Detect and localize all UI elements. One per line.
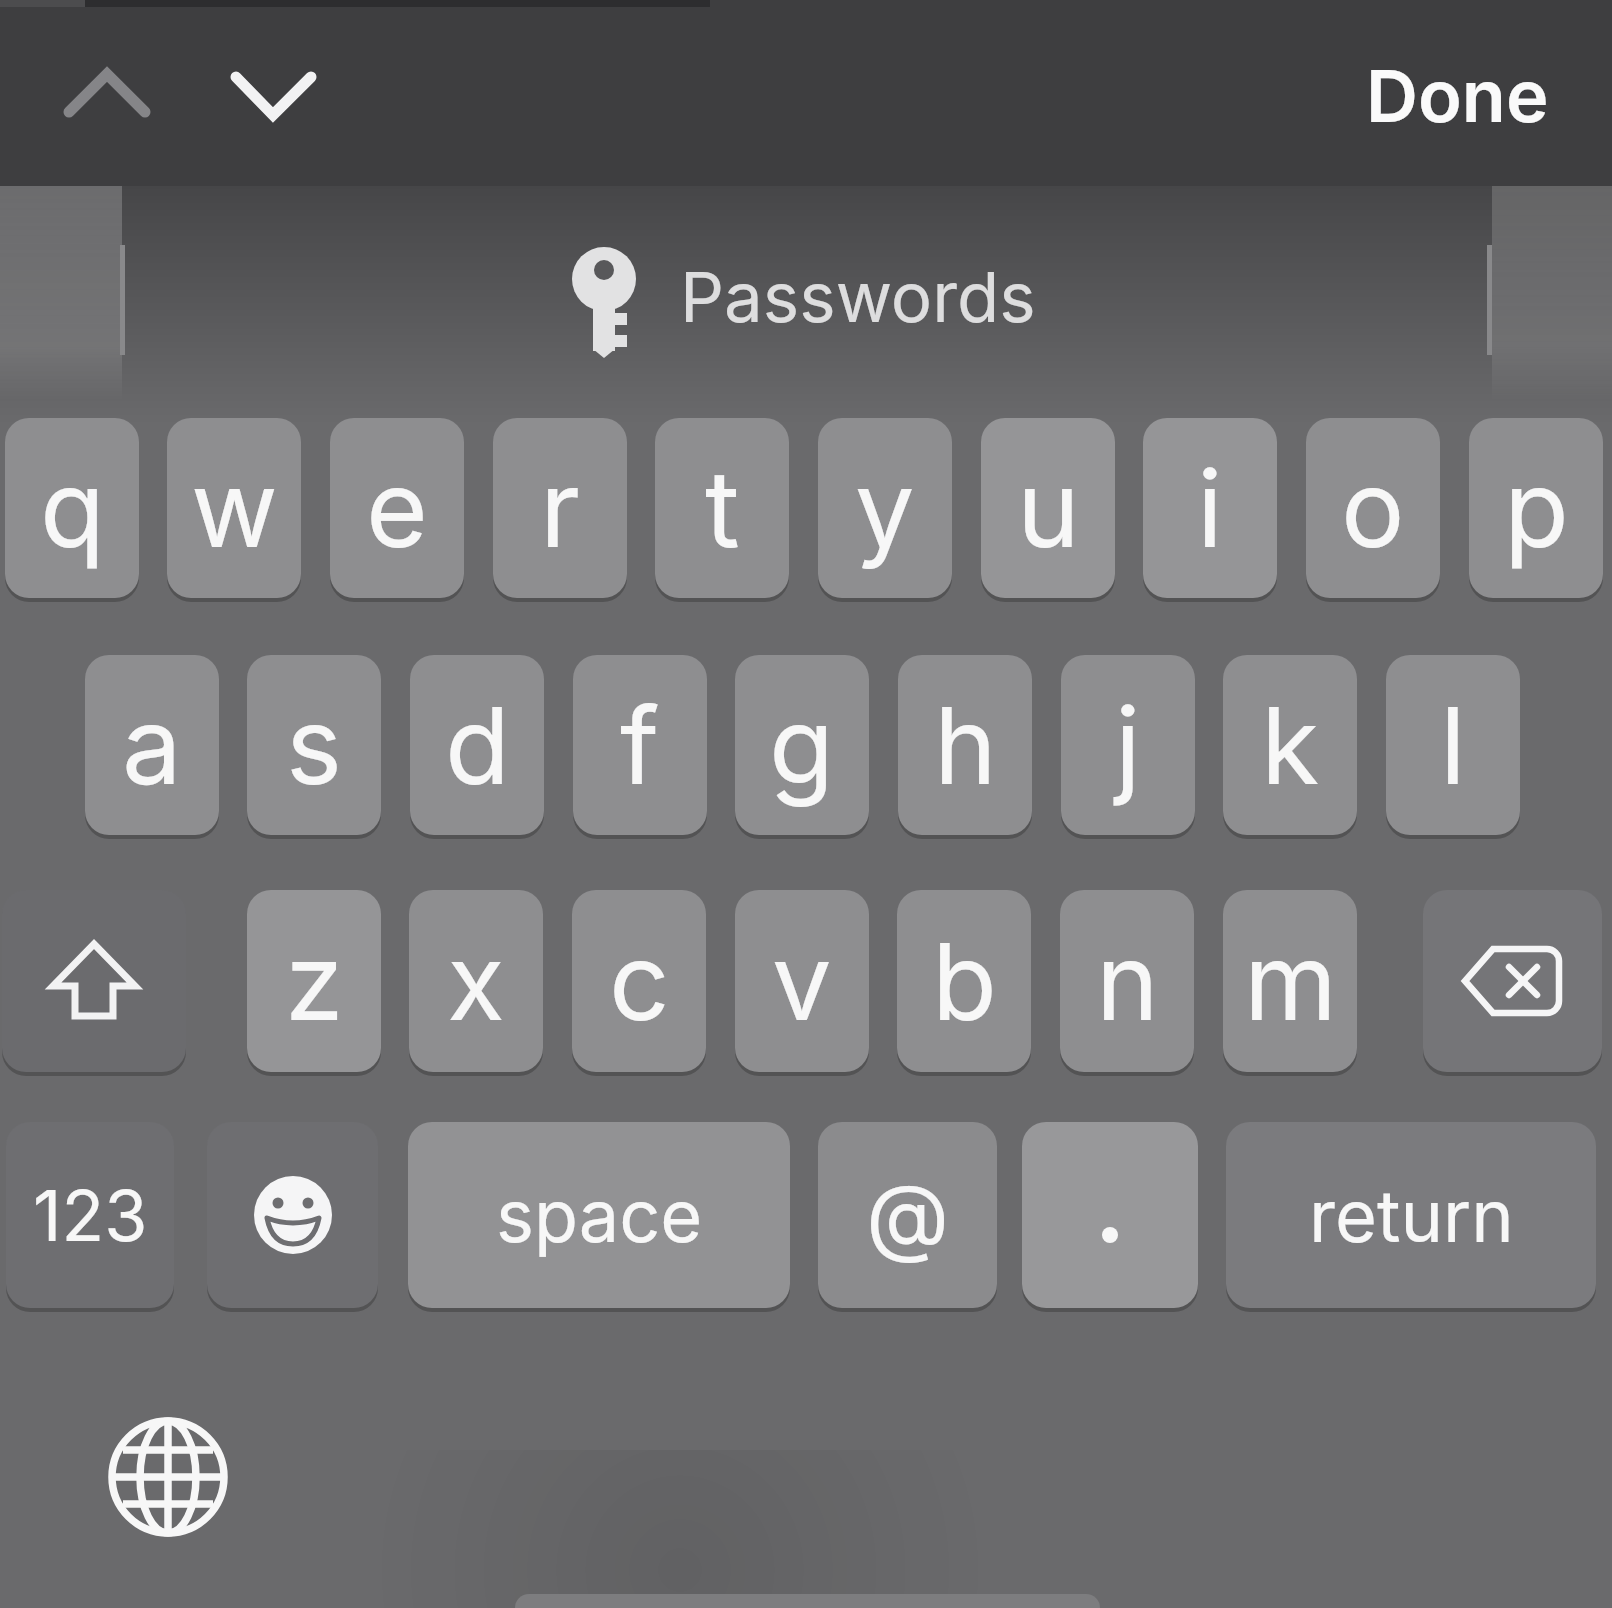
staticText: m (1244, 917, 1337, 1045)
staticText: s (286, 681, 342, 809)
button[interactable]: v (735, 890, 869, 1072)
staticText: x (447, 917, 505, 1045)
staticText: l (1440, 681, 1466, 809)
staticText: q (40, 444, 105, 572)
button[interactable]: c (572, 890, 706, 1072)
button[interactable]: j (1061, 655, 1195, 835)
staticText: z (285, 917, 344, 1045)
staticText: return (1309, 1172, 1514, 1259)
staticText: a (122, 681, 182, 809)
button[interactable]: b (897, 890, 1031, 1072)
staticText: i (1197, 444, 1223, 572)
staticText: w (191, 444, 278, 572)
button[interactable] (140, 220, 1480, 380)
button[interactable]: x (409, 890, 543, 1072)
staticText: o (1341, 444, 1405, 572)
button[interactable]: o (1306, 418, 1440, 598)
button[interactable]: p (1469, 418, 1603, 598)
button[interactable] (2, 890, 186, 1072)
staticText: y (855, 444, 915, 572)
button[interactable] (207, 1122, 378, 1308)
button[interactable]: @ (818, 1122, 997, 1308)
button[interactable] (48, 52, 168, 142)
button[interactable]: y (818, 418, 952, 598)
button[interactable]: m (1223, 890, 1357, 1072)
button[interactable]: u (981, 418, 1115, 598)
button[interactable] (1022, 1122, 1198, 1308)
staticText: k (1261, 681, 1320, 809)
staticText: d (445, 681, 510, 809)
staticText: u (1017, 444, 1080, 572)
staticText: b (932, 917, 997, 1045)
staticText: g (769, 681, 835, 809)
staticText: h (934, 681, 997, 809)
staticText: t (705, 444, 740, 572)
button[interactable]: q (5, 418, 139, 598)
staticText: space (496, 1172, 703, 1259)
button[interactable] (216, 52, 336, 142)
staticText: Done (1366, 52, 1549, 139)
button[interactable]: e (330, 418, 464, 598)
button[interactable]: l (1386, 655, 1520, 835)
staticText: 123 (33, 1173, 148, 1258)
button[interactable]: d (410, 655, 544, 835)
staticText: j (1115, 681, 1141, 809)
button[interactable]: r (493, 418, 627, 598)
button[interactable]: space (408, 1122, 790, 1308)
button[interactable]: a (85, 655, 219, 835)
button[interactable]: s (247, 655, 381, 835)
button[interactable]: h (898, 655, 1032, 835)
staticText: f (620, 681, 660, 809)
staticText: c (609, 917, 670, 1045)
button[interactable] (98, 1407, 238, 1547)
staticText: n (1096, 917, 1159, 1045)
button[interactable]: n (1060, 890, 1194, 1072)
button[interactable]: k (1223, 655, 1357, 835)
button[interactable]: g (735, 655, 869, 835)
button[interactable]: return (1226, 1122, 1596, 1308)
button[interactable]: w (167, 418, 301, 598)
button[interactable]: Done (1310, 40, 1549, 150)
staticText: Passwords (680, 255, 1036, 338)
staticText: e (366, 444, 428, 572)
button[interactable]: 123 (6, 1122, 174, 1308)
staticText: @ (866, 1163, 950, 1267)
button[interactable] (1423, 890, 1602, 1072)
button[interactable]: z (247, 890, 381, 1072)
button[interactable]: t (655, 418, 789, 598)
staticText: v (772, 917, 832, 1045)
staticText: p (1504, 444, 1569, 572)
button[interactable]: f (573, 655, 707, 835)
staticText: r (540, 444, 580, 572)
button[interactable]: i (1143, 418, 1277, 598)
